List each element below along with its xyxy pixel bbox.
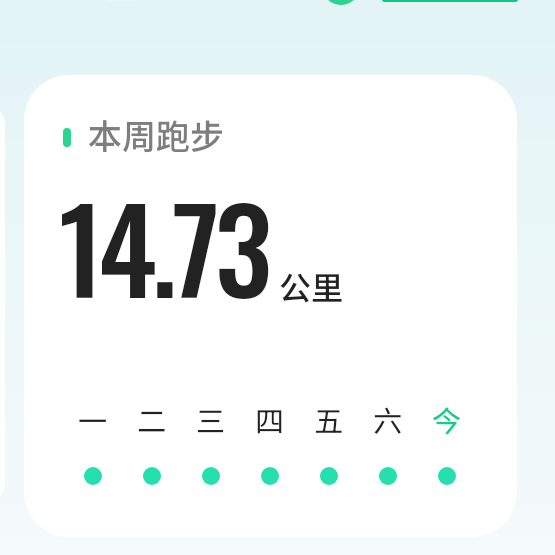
button[interactable]: 二 (122, 398, 181, 485)
staticText: 一 (63, 398, 122, 440)
button[interactable]: 五 (299, 398, 358, 485)
button[interactable]: 今 (417, 398, 476, 485)
button[interactable]: 三 (181, 398, 240, 485)
button[interactable]: 四 (240, 398, 299, 485)
other: Activity ring (322, 0, 360, 5)
button[interactable]: 六 (358, 398, 417, 485)
staticText: 公里 (279, 263, 344, 309)
staticText: 今 (417, 398, 476, 440)
staticText: 六 (358, 398, 417, 440)
staticText: 四 (240, 398, 299, 440)
staticText: 二 (122, 398, 181, 440)
staticText: 本周跑步 (88, 110, 224, 159)
button[interactable]: 本周跑步 (24, 75, 517, 537)
staticText: 三 (181, 398, 240, 440)
button[interactable]: Previous card (0, 105, 5, 503)
staticText: 五 (299, 398, 358, 440)
button[interactable]: 一 (63, 398, 122, 485)
staticText: 14.73 (59, 160, 268, 332)
